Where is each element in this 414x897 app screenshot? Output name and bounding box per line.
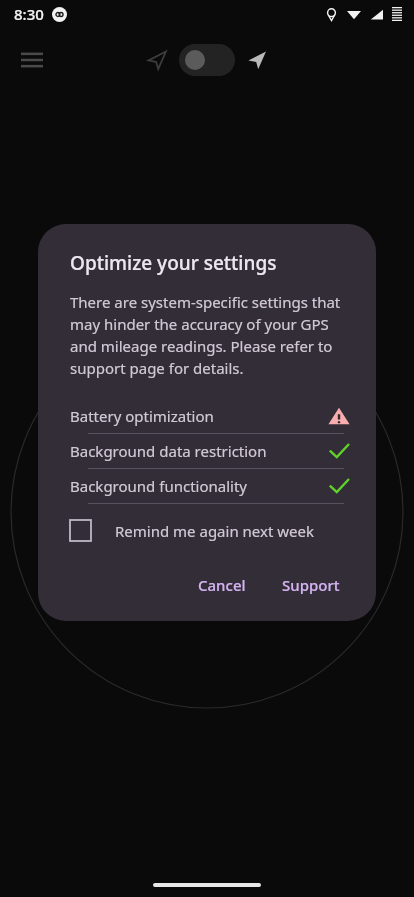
button[interactable]: Battery optimization	[70, 399, 350, 433]
button[interactable]: Navigation on	[239, 42, 275, 78]
button[interactable]: Toggle tracking	[179, 44, 235, 76]
staticText: Support	[282, 575, 340, 595]
button[interactable]: Navigation off	[139, 42, 175, 78]
button[interactable]: Menu	[8, 36, 56, 84]
button[interactable]: Background functionality	[70, 469, 350, 503]
staticText: Battery optimization	[70, 406, 214, 426]
staticText: Cancel	[198, 575, 246, 595]
button[interactable]: Support	[272, 567, 350, 603]
staticText: Background data restriction	[70, 441, 267, 461]
staticText: There are system-specific settings that …	[70, 292, 350, 379]
staticText: Optimize your settings	[70, 250, 277, 276]
staticText: Remind me again next week	[115, 521, 314, 541]
button[interactable]: Remind me again next week	[70, 516, 350, 545]
staticText: 8:30	[14, 4, 44, 24]
button[interactable]: Background data restriction	[70, 434, 350, 468]
button[interactable]: Cancel	[188, 567, 256, 603]
staticText: Background functionality	[70, 476, 247, 496]
